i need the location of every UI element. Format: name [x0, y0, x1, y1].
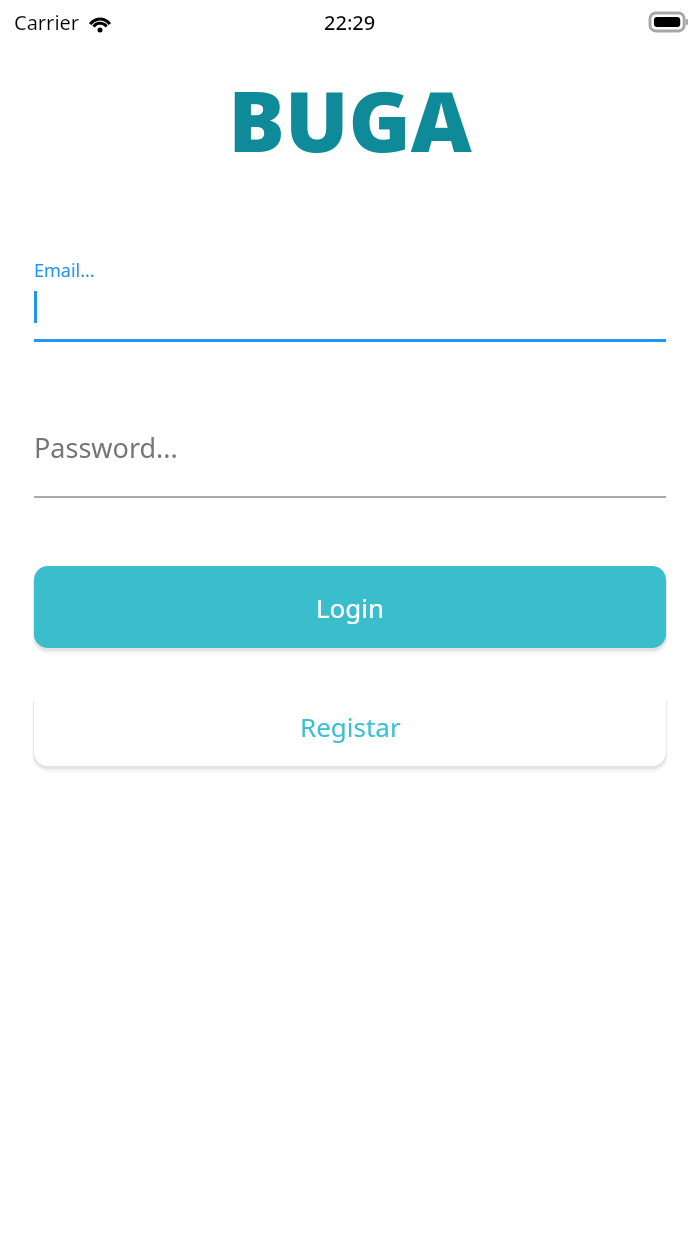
other: Battery	[650, 13, 688, 31]
button[interactable]: Email...	[34, 258, 666, 342]
staticText: Email...	[34, 258, 95, 283]
staticText: Login	[316, 590, 385, 625]
staticText: Registar	[300, 709, 401, 744]
staticText: 22:29	[324, 9, 376, 36]
button[interactable]: Login	[34, 566, 666, 648]
staticText: Carrier	[14, 9, 80, 36]
button[interactable]: Password...	[34, 429, 666, 498]
other: Wi-Fi	[88, 14, 112, 32]
staticText: Password...	[34, 429, 178, 466]
staticText: BUGA	[228, 62, 472, 176]
button[interactable]: Registar	[34, 686, 666, 766]
